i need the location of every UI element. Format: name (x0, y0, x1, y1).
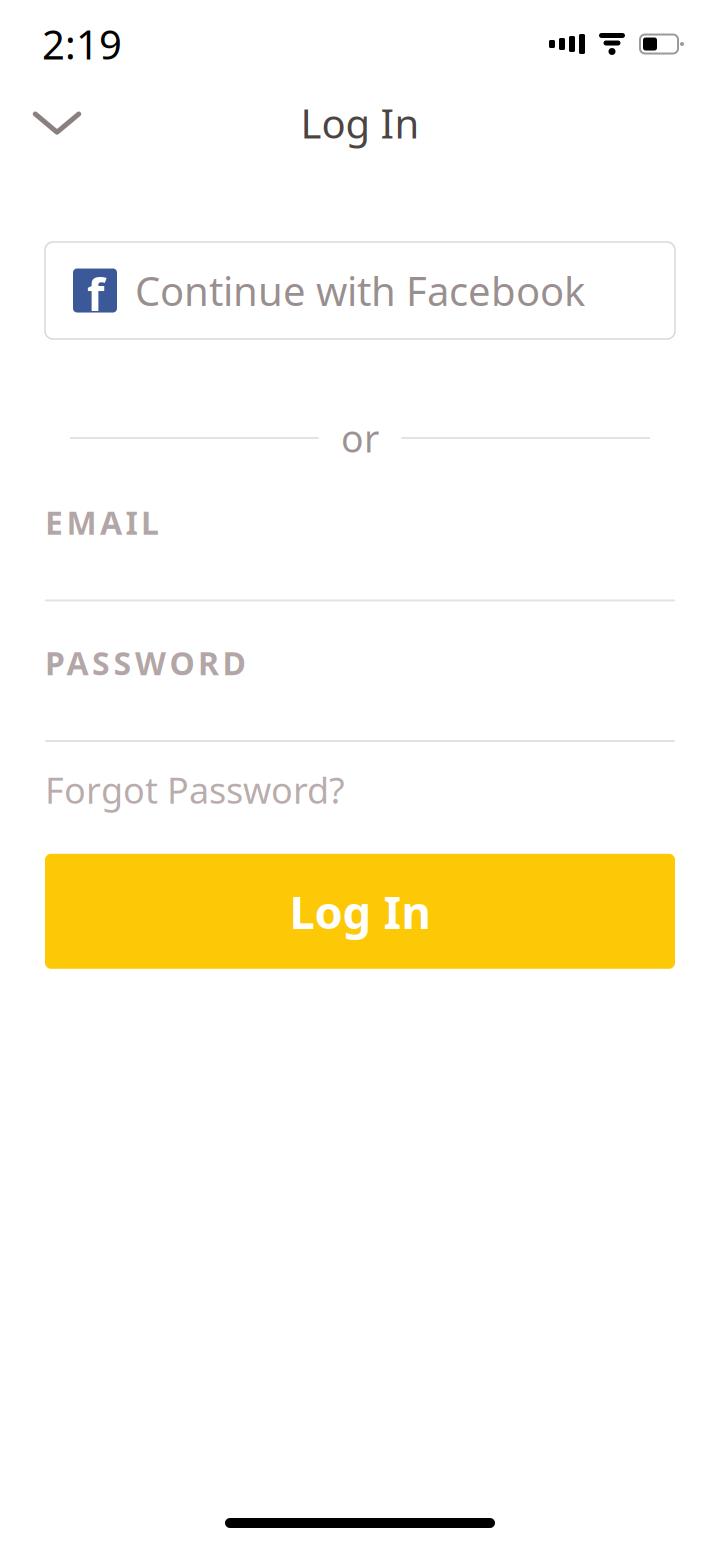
staticText: Forgot Password? (45, 766, 345, 814)
button[interactable]: Dismiss (26, 95, 88, 151)
staticText: Continue with Facebook (135, 264, 585, 317)
button[interactable]: Log In (45, 854, 675, 969)
button[interactable]: Forgot Password? (45, 760, 345, 820)
staticText: 2:19 (42, 17, 122, 70)
staticText: Log In (300, 96, 419, 149)
staticText: f (87, 263, 105, 324)
staticText: or (341, 413, 379, 463)
staticText: EMAIL (45, 501, 159, 543)
staticText: PASSWORD (45, 641, 245, 684)
button[interactable]: f (45, 242, 675, 339)
staticText: Log In (289, 881, 430, 941)
